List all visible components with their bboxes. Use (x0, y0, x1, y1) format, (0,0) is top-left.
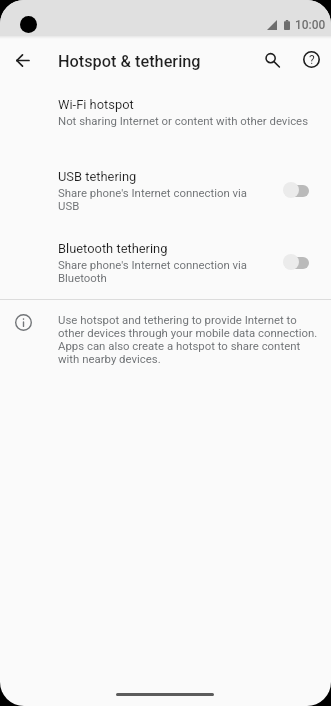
staticText: Hotspot & tethering (58, 52, 331, 71)
staticText: USB tethering (58, 169, 331, 184)
staticText: Bluetooth tethering (58, 241, 331, 256)
staticText: 10:00 (295, 18, 331, 32)
button[interactable]: Toggle (283, 182, 310, 199)
button[interactable]: Help (292, 40, 331, 79)
button[interactable]: Bluetooth tethering (0, 235, 331, 307)
staticText: with nearby devices. (58, 352, 331, 365)
button[interactable]: USB tethering (0, 163, 331, 235)
staticText: Wi-Fi hotspot (58, 97, 331, 112)
staticText: Share phone's Internet connection via (58, 186, 331, 199)
staticText: other devices through your mobile data c… (58, 326, 331, 339)
staticText: Not sharing Internet or content with oth… (58, 114, 331, 127)
button[interactable]: Toggle (283, 254, 310, 271)
staticText: Bluetooth (58, 271, 331, 284)
staticText: Apps can also create a hotspot to share … (58, 339, 331, 352)
staticText: Use hotspot and tethering to provide Int… (58, 313, 331, 326)
staticText: ? (309, 53, 315, 67)
button[interactable]: Back (4, 42, 41, 79)
staticText: USB (58, 199, 331, 212)
button[interactable]: Wi-Fi hotspot (0, 91, 331, 163)
button[interactable]: Search (253, 41, 291, 79)
staticText: Share phone's Internet connection via (58, 258, 331, 271)
